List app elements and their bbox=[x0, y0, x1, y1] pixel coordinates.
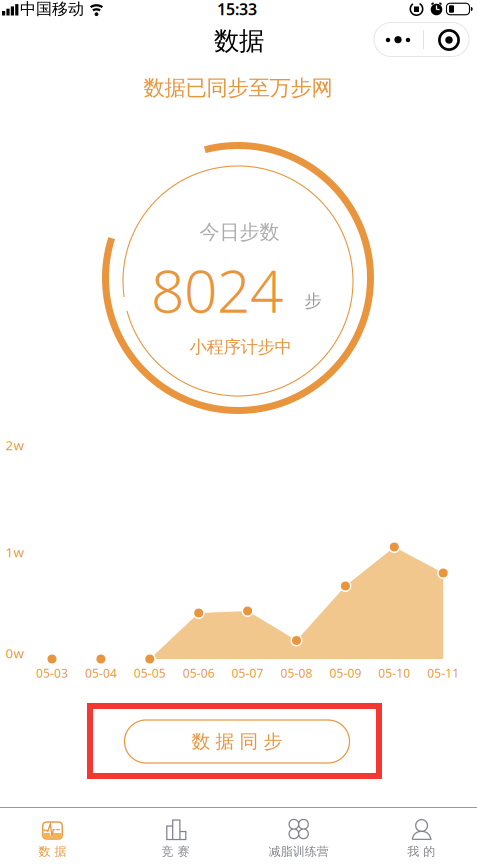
button[interactable]: Exit mini program bbox=[424, 23, 470, 56]
staticText: 数据已同步至万步网 bbox=[143, 75, 332, 101]
staticText: 竞 赛 bbox=[162, 844, 190, 859]
button[interactable]: 竞 赛 bbox=[124, 814, 228, 864]
staticText: 05-03 bbox=[36, 665, 68, 681]
staticText: 05-04 bbox=[85, 665, 117, 681]
button[interactable]: 我 的 bbox=[369, 814, 473, 864]
staticText: 步 bbox=[304, 290, 321, 312]
staticText: 2w bbox=[5, 436, 23, 454]
staticText: 小程序计步中 bbox=[189, 336, 291, 358]
staticText: 15:33 bbox=[217, 0, 257, 20]
staticText: 05-06 bbox=[183, 665, 215, 681]
staticText: 05-09 bbox=[329, 665, 361, 681]
staticText: 数 据 bbox=[38, 844, 66, 859]
staticText: 05-10 bbox=[378, 665, 410, 681]
staticText: 05-07 bbox=[232, 665, 264, 681]
staticText: 05-05 bbox=[134, 665, 166, 681]
button[interactable]: 数据同步 bbox=[124, 720, 349, 763]
staticText: 0w bbox=[5, 644, 23, 662]
staticText: 今日步数 bbox=[199, 220, 279, 244]
staticText: 我 的 bbox=[407, 844, 435, 859]
staticText: 8024 bbox=[151, 251, 283, 329]
staticText: 减脂训练营 bbox=[269, 844, 329, 859]
staticText: 05-08 bbox=[280, 665, 312, 681]
staticText: 数据 bbox=[214, 25, 264, 56]
button[interactable]: 减脂训练营 bbox=[247, 814, 351, 864]
staticText: 数据同步 bbox=[191, 730, 282, 753]
staticText: 1w bbox=[5, 543, 23, 561]
button[interactable]: 数 据 bbox=[0, 814, 104, 864]
staticText: 中国移动 bbox=[20, 0, 84, 19]
button[interactable]: More bbox=[375, 23, 421, 56]
staticText: 05-11 bbox=[427, 665, 459, 681]
